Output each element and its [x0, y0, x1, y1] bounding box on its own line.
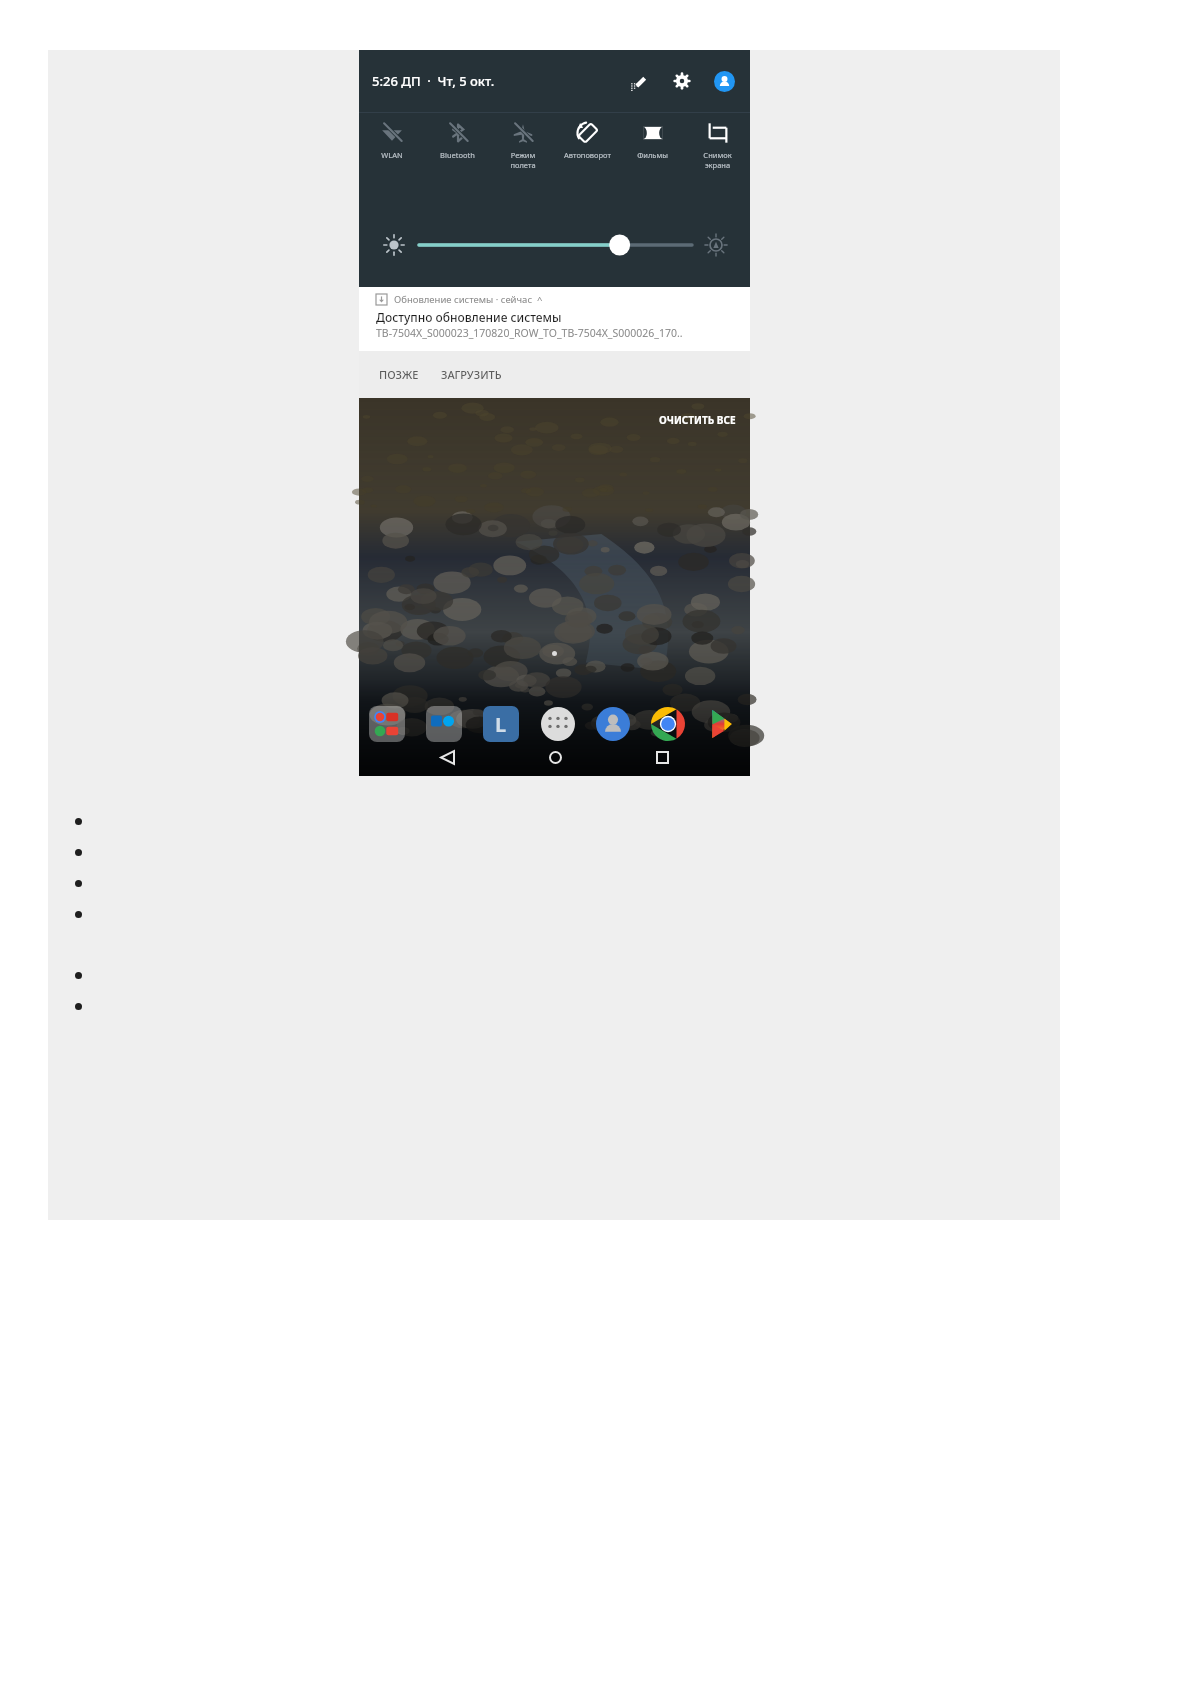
button[interactable]: Фильмы: [620, 113, 685, 203]
button[interactable]: Back: [428, 738, 466, 776]
button[interactable]: ОЧИСТИТЬ ВСЕ: [659, 413, 736, 427]
button[interactable]: ЗАГРУЗИТЬ: [441, 367, 502, 382]
button[interactable]: WLAN: [359, 113, 425, 203]
button[interactable]: L app: [483, 706, 519, 742]
staticText: ЗАГРУЗИТЬ: [441, 367, 502, 382]
button[interactable]: Режим полета: [490, 113, 555, 203]
button[interactable]: Contacts: [596, 707, 630, 741]
staticText: Снимок экрана: [703, 150, 732, 170]
staticText: Режим полета: [510, 150, 536, 170]
staticText: 5:26 ДП · Чт, 5 окт.: [372, 72, 495, 90]
staticText: Обновление системы · сейчас ^: [394, 293, 543, 306]
button[interactable]: Bluetooth: [425, 113, 490, 203]
button[interactable]: Play Store: [706, 707, 740, 741]
staticText: TB-7504X_S000023_170820_ROW_TO_TB-7504X_…: [376, 326, 683, 340]
staticText: L: [495, 711, 507, 738]
staticText: Автоповорот: [564, 150, 611, 160]
button[interactable]: Снимок экрана: [685, 113, 750, 203]
staticText: Доступно обновление системы: [376, 309, 562, 325]
button[interactable]: Chrome: [651, 707, 685, 741]
staticText: ПОЗЖЕ: [379, 367, 419, 382]
button[interactable]: All apps: [541, 707, 575, 741]
button[interactable]: Автоповорот: [555, 113, 620, 203]
staticText: ОЧИСТИТЬ ВСЕ: [659, 413, 736, 427]
button[interactable]: ПОЗЖЕ: [379, 367, 419, 382]
button[interactable]: Google folder: [369, 706, 405, 742]
staticText: WLAN: [381, 150, 403, 160]
button[interactable]: User profile: [708, 65, 740, 97]
button[interactable]: [419, 228, 692, 262]
button[interactable]: Recents: [643, 738, 681, 776]
button[interactable]: Edit: [622, 65, 654, 97]
staticText: Фильмы: [637, 150, 668, 160]
button[interactable]: Office folder: [426, 706, 462, 742]
button[interactable]: Home: [536, 738, 574, 776]
staticText: Bluetooth: [440, 150, 475, 160]
button[interactable]: Settings: [666, 65, 698, 97]
